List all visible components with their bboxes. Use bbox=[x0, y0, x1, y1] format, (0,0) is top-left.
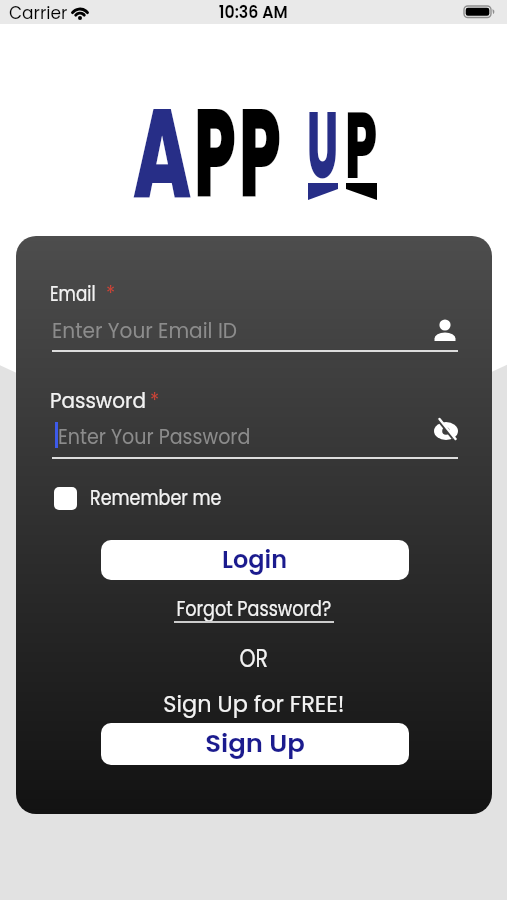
staticText: Carrier bbox=[9, 1, 68, 25]
staticText: * bbox=[150, 386, 160, 415]
button[interactable] bbox=[434, 319, 458, 343]
staticText: OR bbox=[240, 642, 268, 676]
staticText: Login bbox=[222, 543, 288, 577]
staticText: Email bbox=[50, 279, 96, 308]
staticText: Password bbox=[50, 386, 146, 415]
button[interactable] bbox=[52, 414, 458, 459]
staticText: Enter Your Password bbox=[58, 422, 250, 451]
button[interactable] bbox=[52, 306, 458, 352]
staticText: Remember me bbox=[90, 483, 222, 512]
button[interactable]: Sign Up bbox=[101, 723, 409, 765]
button[interactable] bbox=[433, 418, 459, 444]
staticText: * bbox=[106, 279, 116, 308]
staticText: Forgot Password? bbox=[176, 593, 332, 624]
button[interactable]: Login bbox=[101, 540, 409, 580]
staticText: 10:36 AM bbox=[219, 0, 288, 24]
staticText: Sign Up bbox=[205, 727, 306, 761]
staticText: Enter Your Email ID bbox=[52, 316, 237, 345]
staticText: Sign Up for FREE! bbox=[163, 688, 345, 720]
button[interactable]: Forgot Password? bbox=[176, 593, 332, 624]
button[interactable] bbox=[54, 487, 77, 510]
